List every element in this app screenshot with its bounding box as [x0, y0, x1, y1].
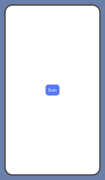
button[interactable]: Scan	[45, 84, 59, 95]
staticText: Scan	[48, 87, 57, 93]
